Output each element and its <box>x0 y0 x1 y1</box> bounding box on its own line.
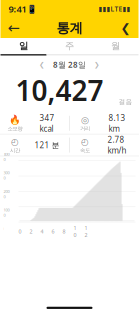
button[interactable]: Share <box>114 18 136 38</box>
button[interactable]: 월 <box>92 38 138 54</box>
staticText: 주 <box>65 40 74 52</box>
staticText: 월 <box>111 40 120 52</box>
staticText: ◴ <box>11 136 19 147</box>
button[interactable]: 일 <box>0 38 46 54</box>
staticText: 통계 <box>56 20 82 36</box>
staticText: LTE <box>110 5 122 13</box>
staticText: 걸음 <box>118 98 132 106</box>
staticText: 121 분 <box>34 140 59 150</box>
staticText: 1000 <box>3 207 9 218</box>
staticText: 2.78 km/h <box>107 134 126 156</box>
staticText: ← <box>7 20 19 36</box>
staticText: 거리 <box>80 125 90 132</box>
staticText: ❮ <box>120 21 130 35</box>
staticText: 347 kcal <box>39 113 54 134</box>
staticText: ❮ <box>39 61 45 68</box>
staticText: 4000 <box>3 151 9 162</box>
staticText: 2000 <box>3 189 9 199</box>
staticText: 4 <box>40 228 43 235</box>
button[interactable]: Back <box>2 18 24 38</box>
staticText: 일 <box>19 40 28 52</box>
staticText: 8월 28일 <box>53 59 86 70</box>
staticText: ◴ <box>81 136 89 147</box>
staticText: 8.13 km <box>108 113 125 134</box>
staticText: 소모량 <box>7 125 22 132</box>
staticText: 6 <box>51 228 54 235</box>
staticText: ▮▮ <box>122 5 130 13</box>
staticText: ❯ <box>94 61 100 68</box>
staticText: 속도 <box>80 147 90 154</box>
staticText: 시간 <box>10 147 20 154</box>
staticText: ◎ <box>81 115 89 125</box>
staticText: 10 <box>73 224 76 239</box>
staticText: 10,427 <box>15 72 103 109</box>
staticText: 8 <box>62 228 65 235</box>
staticText: 12 <box>84 224 87 239</box>
staticText: 🔥 <box>9 115 21 125</box>
staticText: 3000 <box>3 170 9 181</box>
staticText: 📱 <box>26 4 36 13</box>
staticText: 9:41 <box>8 3 26 15</box>
button[interactable]: 주 <box>46 38 92 54</box>
staticText: 0 <box>18 228 21 235</box>
staticText: 2 <box>29 228 32 235</box>
button[interactable]: Previous day <box>37 59 47 71</box>
staticText: ▮▮▮ <box>98 5 110 13</box>
button[interactable]: Next day <box>92 59 102 71</box>
